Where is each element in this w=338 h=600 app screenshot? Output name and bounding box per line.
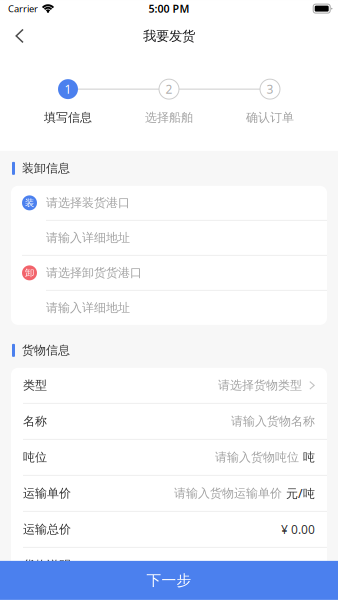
- staticText: 确认订单: [246, 110, 294, 125]
- staticText: 请选择装货港口: [46, 195, 130, 210]
- button[interactable]: 装: [11, 186, 327, 220]
- button[interactable]: 下一步: [0, 561, 338, 600]
- button[interactable]: 运输总价: [11, 512, 327, 547]
- staticText: 吨: [303, 450, 315, 465]
- staticText: 装: [25, 197, 34, 209]
- staticText: 请输入详细地址: [46, 300, 130, 315]
- staticText: 元/吨: [286, 485, 315, 501]
- staticText: 5:00 PM: [148, 1, 189, 16]
- staticText: 2: [165, 81, 172, 97]
- staticText: 请输入货物吨位: [215, 450, 299, 465]
- button[interactable]: 吨位: [11, 440, 327, 475]
- staticText: 请输入货物名称: [231, 414, 315, 429]
- staticText: 下一步: [146, 571, 191, 589]
- staticText: 请输入货物运输单价: [174, 486, 282, 501]
- button[interactable]: 请输入详细地址: [11, 221, 327, 255]
- button[interactable]: 货物说明: [11, 548, 327, 583]
- staticText: 卸: [25, 267, 34, 279]
- staticText: 吨位: [23, 450, 47, 465]
- button[interactable]: 卸: [11, 256, 327, 290]
- staticText: 货物信息: [22, 343, 70, 358]
- button[interactable]: 类型: [11, 368, 327, 403]
- staticText: ¥ 0.00: [281, 521, 315, 537]
- staticText: 我要发货: [143, 28, 195, 44]
- staticText: 装卸信息: [22, 161, 70, 176]
- button[interactable]: Back: [0, 20, 43, 52]
- staticText: 填写信息: [44, 110, 92, 125]
- button[interactable]: 名称: [11, 404, 327, 439]
- staticText: 名称: [23, 414, 47, 429]
- staticText: 请输入详细地址: [46, 230, 130, 245]
- staticText: 运输单价: [23, 486, 71, 501]
- staticText: 请选择卸货货港口: [46, 265, 142, 280]
- staticText: 1: [64, 81, 71, 97]
- staticText: Carrier: [8, 2, 38, 15]
- staticText: 运输总价: [23, 522, 71, 537]
- button[interactable]: 请输入详细地址: [11, 291, 327, 325]
- button[interactable]: 运输单价: [11, 476, 327, 511]
- staticText: 选择船舶: [145, 110, 193, 125]
- staticText: 类型: [23, 378, 47, 393]
- staticText: 请选择货物类型: [218, 378, 302, 393]
- staticText: 3: [266, 81, 273, 97]
- staticText: 货物说明: [23, 558, 71, 573]
